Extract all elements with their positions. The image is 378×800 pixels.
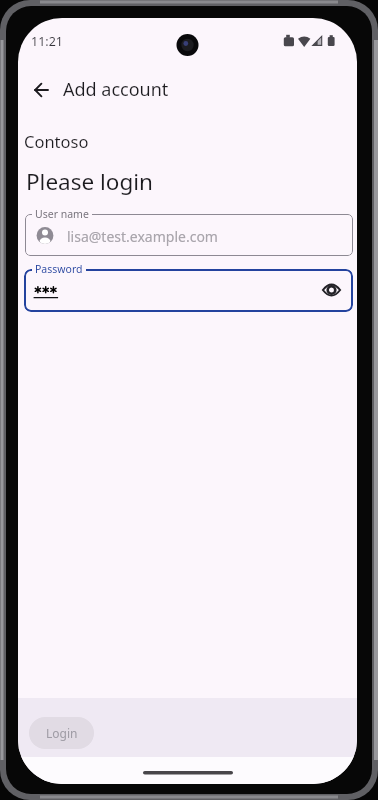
staticText: lisa@test.example.com <box>67 227 218 246</box>
staticText: Please login <box>26 166 154 197</box>
staticText: User name <box>35 207 89 221</box>
button[interactable] <box>21 70 61 110</box>
staticText: Password <box>35 262 83 276</box>
staticText: Login <box>46 725 78 741</box>
staticText: Add account <box>63 77 169 102</box>
button[interactable]: Login <box>29 717 94 749</box>
button[interactable] <box>24 269 353 312</box>
staticText: Contoso <box>24 130 89 152</box>
button[interactable] <box>25 214 353 256</box>
staticText: 11:21 <box>31 33 63 50</box>
